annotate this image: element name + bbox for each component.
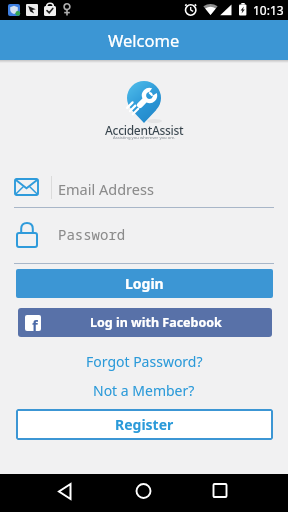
staticText: 10:13	[253, 2, 284, 18]
staticText: f	[32, 315, 38, 331]
button[interactable]	[48, 476, 81, 510]
staticText: Email Address	[58, 179, 154, 199]
button[interactable]	[127, 476, 160, 510]
staticText: Register	[115, 415, 174, 434]
staticText: Login	[125, 274, 164, 293]
staticText: Log in with Facebook	[90, 314, 222, 331]
button[interactable]: Forgot Password?	[86, 352, 203, 371]
button[interactable]	[203, 476, 236, 510]
button[interactable]: Not a Member?	[93, 381, 195, 400]
staticText: Assisting you wherever you are.	[113, 135, 176, 141]
button[interactable]: Login	[16, 269, 273, 298]
button[interactable]: f	[18, 308, 272, 337]
staticText: Password	[58, 225, 126, 244]
button[interactable]: Register	[16, 409, 273, 440]
staticText: AccidentAssist	[105, 122, 184, 138]
staticText: Welcome	[108, 29, 180, 51]
